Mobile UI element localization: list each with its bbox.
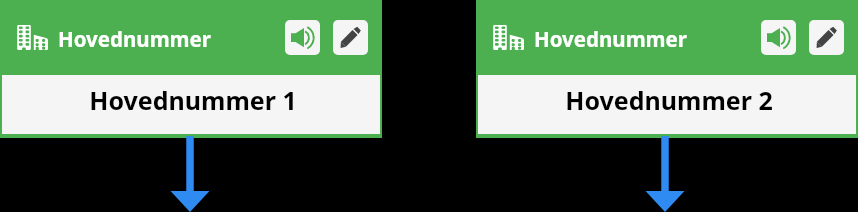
button[interactable]: Edit (809, 20, 844, 55)
button[interactable]: Play name (761, 20, 796, 55)
button[interactable]: Hovednummer 2 (478, 75, 856, 134)
button[interactable]: Hovednummer 1 (2, 75, 380, 134)
button[interactable]: Play name (285, 20, 320, 55)
staticText: Hovednummer 1 (89, 83, 297, 117)
staticText: Hovednummer 2 (565, 83, 773, 117)
staticText: Hovednummer (534, 25, 688, 53)
button[interactable]: Edit (333, 20, 368, 55)
staticText: Hovednummer (58, 25, 212, 53)
